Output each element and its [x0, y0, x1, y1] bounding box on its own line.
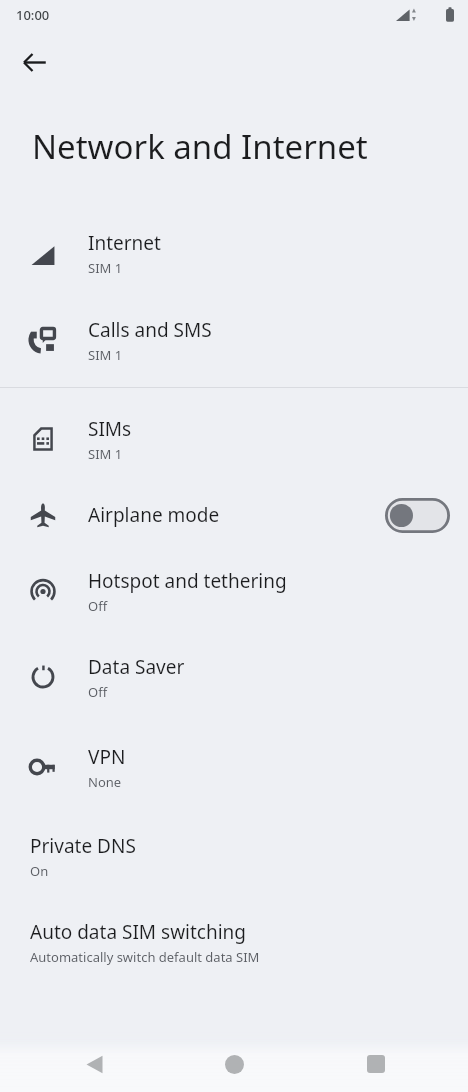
staticText: VPN	[88, 744, 126, 770]
button[interactable]: Internet	[0, 206, 468, 301]
button[interactable]: Back	[70, 1040, 118, 1088]
staticText: Hotspot and tethering	[88, 568, 287, 594]
button[interactable]: Airplane mode	[0, 478, 468, 552]
button[interactable]: Calls and SMS	[0, 301, 468, 379]
button[interactable]: Home	[210, 1040, 258, 1088]
button[interactable]: Private DNS	[0, 810, 468, 902]
staticText: Off	[88, 597, 108, 615]
button[interactable]: VPN	[0, 724, 468, 810]
staticText: Calls and SMS	[88, 317, 212, 343]
staticText: SIM 1	[88, 259, 123, 277]
button[interactable]: Hotspot and tethering	[0, 552, 468, 630]
staticText: On	[30, 862, 49, 880]
staticText: Internet	[88, 230, 161, 256]
staticText: Private DNS	[30, 833, 136, 859]
button[interactable]: Back	[10, 38, 58, 86]
button[interactable]: Airplane mode toggle, off	[385, 498, 450, 533]
staticText: SIM 1	[88, 346, 123, 364]
staticText: Network and Internet	[32, 124, 368, 169]
staticText: Data Saver	[88, 654, 185, 680]
staticText: SIMs	[88, 416, 132, 442]
button[interactable]: Data Saver	[0, 630, 468, 724]
staticText: Airplane mode	[88, 502, 220, 528]
button[interactable]: SIMs	[0, 400, 468, 478]
staticText: Off	[88, 683, 108, 701]
staticText: Auto data SIM switching	[30, 919, 247, 945]
staticText: SIM 1	[88, 445, 123, 463]
staticText: None	[88, 773, 122, 791]
staticText: Automatically switch default data SIM	[30, 948, 260, 966]
button[interactable]: Recent apps	[352, 1040, 400, 1088]
staticText: 10:00	[16, 6, 50, 24]
button[interactable]: Auto data SIM switching	[0, 902, 468, 982]
